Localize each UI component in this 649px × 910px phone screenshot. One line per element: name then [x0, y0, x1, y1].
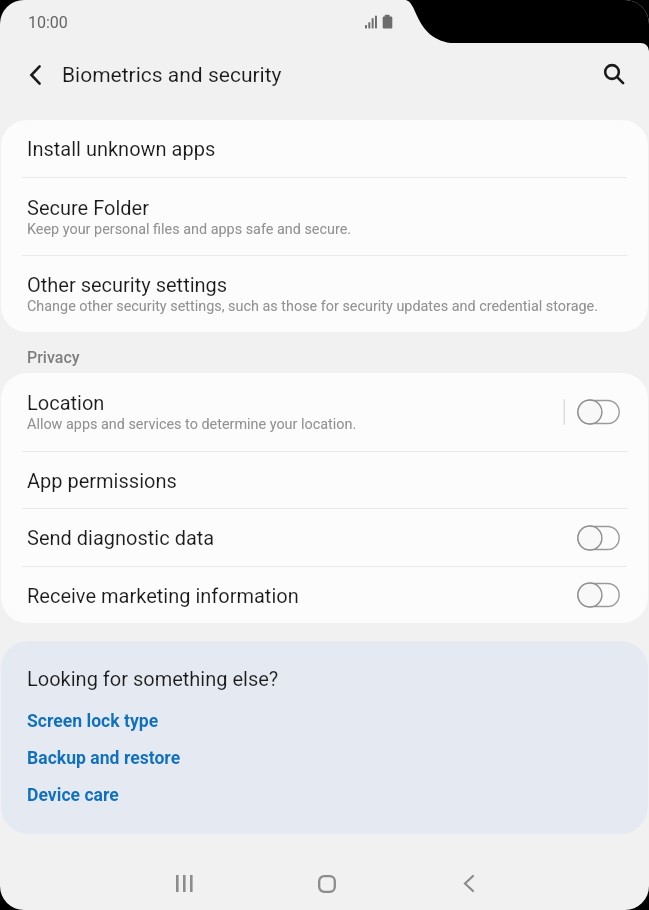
staticText: App permissions: [27, 469, 177, 492]
staticText: Receive marketing information: [27, 584, 299, 607]
button[interactable]: Other security settings: [1, 256, 648, 332]
staticText: Looking for something else?: [27, 667, 279, 690]
button[interactable]: Recent apps: [154, 858, 214, 908]
button[interactable]: Device care: [27, 785, 119, 806]
staticText: 10:00: [28, 13, 68, 32]
button[interactable]: Secure Folder: [1, 178, 648, 255]
button[interactable]: Send diagnostic data: [1, 509, 648, 566]
button[interactable]: Search: [589, 52, 640, 98]
button[interactable]: Install unknown apps: [1, 120, 648, 177]
button[interactable]: Receive marketing information: [1, 567, 648, 623]
staticText: Install unknown apps: [27, 137, 216, 160]
button[interactable]: Location: [1, 373, 648, 451]
button[interactable]: Home: [297, 859, 357, 909]
staticText: Privacy: [27, 348, 80, 367]
staticText: Keep your personal files and apps safe a…: [27, 221, 352, 238]
button[interactable]: Navigate up: [10, 52, 60, 98]
staticText: Change other security settings, such as …: [27, 298, 598, 315]
button[interactable]: Backup and restore: [27, 748, 181, 769]
button[interactable]: App permissions: [1, 452, 648, 508]
staticText: Other security settings: [27, 273, 228, 296]
staticText: Allow apps and services to determine you…: [27, 416, 357, 433]
staticText: Send diagnostic data: [27, 526, 215, 549]
staticText: Location: [27, 391, 105, 414]
button[interactable]: Back: [439, 858, 499, 908]
button[interactable]: Screen lock type: [27, 711, 159, 732]
staticText: Secure Folder: [27, 196, 149, 219]
staticText: Biometrics and security: [62, 63, 282, 88]
